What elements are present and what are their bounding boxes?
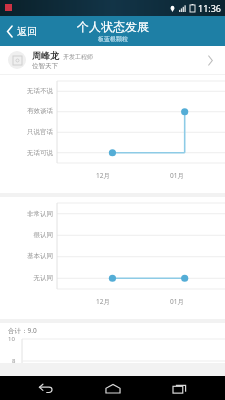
staticText: 12月: [96, 297, 110, 306]
staticText: 只说官话: [27, 128, 53, 136]
staticText: 非常认同: [27, 210, 53, 218]
staticText: 01月: [170, 171, 184, 180]
button[interactable]: 返回: [0, 21, 44, 42]
button[interactable]: Back: [26, 376, 66, 400]
staticText: 合计：9.0: [8, 326, 37, 335]
staticText: 基本认同: [27, 252, 53, 260]
staticText: 无话可说: [27, 149, 53, 157]
staticText: 8: [12, 357, 16, 365]
staticText: 10: [8, 335, 15, 343]
staticText: 周峰龙: [32, 50, 59, 61]
staticText: 12月: [96, 171, 110, 180]
staticText: 返回: [17, 25, 37, 38]
staticText: 11:36: [198, 2, 222, 14]
staticText: 个人状态发展: [77, 19, 149, 34]
staticText: 无认同: [33, 274, 53, 282]
staticText: 01月: [170, 297, 184, 306]
staticText: 很认同: [33, 231, 53, 239]
button[interactable]: 周峰龙: [0, 46, 225, 74]
staticText: 板蓝根颗粒: [98, 35, 128, 43]
staticText: 有效谈话: [27, 107, 53, 115]
staticText: 位智天下: [32, 62, 58, 70]
button[interactable]: Home: [93, 376, 133, 400]
other: 查看详情: [203, 53, 217, 67]
staticText: 无话不说: [27, 87, 53, 95]
staticText: 开发工程师: [63, 53, 93, 61]
button[interactable]: Recent apps: [159, 376, 199, 400]
